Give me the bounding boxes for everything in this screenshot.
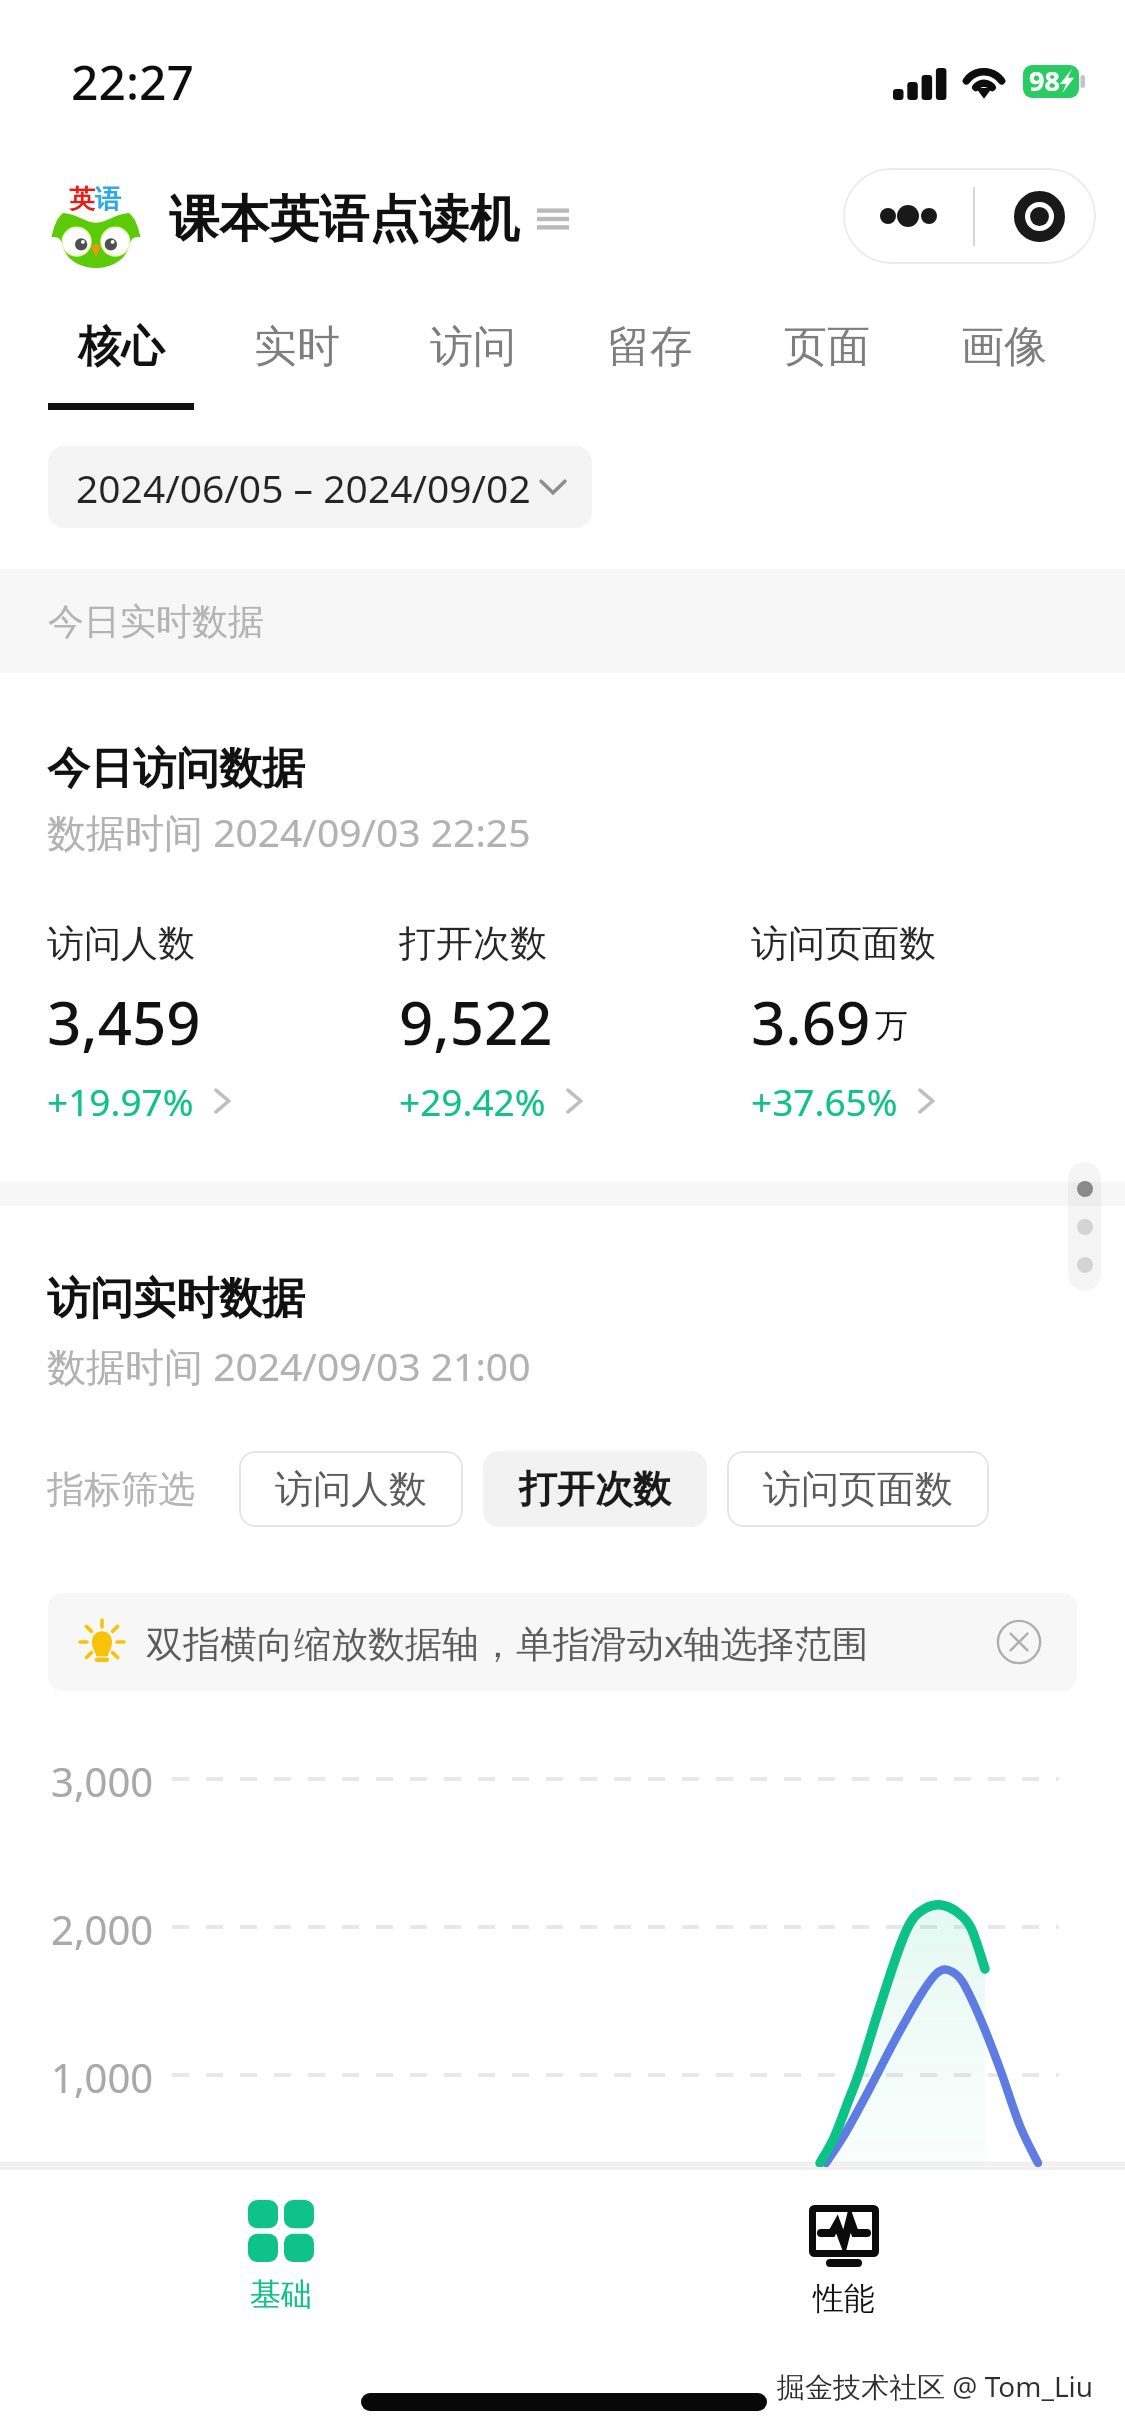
staticText: 核心	[78, 320, 164, 374]
staticText: 打开次数	[399, 920, 547, 967]
button[interactable]: 页面	[738, 290, 915, 425]
staticText: +37.65%	[751, 1076, 898, 1126]
button[interactable]: 访问页面数	[751, 920, 1103, 1126]
button[interactable]: 访问页面数	[727, 1451, 989, 1527]
button[interactable]: 访问人数	[47, 920, 399, 1126]
button[interactable]: 实时	[209, 290, 385, 425]
button[interactable]: Close tip	[995, 1618, 1043, 1666]
staticText: 3,459	[47, 981, 201, 1063]
staticText: 访问	[430, 320, 516, 374]
staticText: 性能	[813, 2279, 875, 2318]
staticText: 2,000	[51, 1902, 154, 1956]
staticText: 访问人数	[275, 1465, 427, 1513]
staticText: 今日实时数据	[48, 599, 264, 644]
staticText: +29.42%	[399, 1076, 546, 1126]
staticText: +19.97%	[47, 1076, 194, 1126]
button[interactable]: 访问	[385, 290, 561, 425]
staticText: 1,000	[51, 2050, 154, 2104]
staticText: 画像	[961, 320, 1047, 374]
staticText: 9,522	[399, 981, 553, 1063]
staticText: 指标筛选	[47, 1466, 195, 1513]
staticText: 访问页面数	[751, 920, 936, 967]
staticText: 数据时间 2024/09/03 21:00	[47, 1339, 531, 1392]
staticText: 基础	[250, 2275, 312, 2314]
staticText: 掘金技术社区 @ Tom_Liu	[777, 2367, 1094, 2405]
staticText: 数据时间 2024/09/03 22:25	[47, 805, 531, 858]
staticText: 实时	[254, 320, 340, 374]
staticText: 3.69	[751, 981, 871, 1063]
staticText: 课本英语点读机	[169, 188, 519, 251]
staticText: 22:27	[71, 49, 194, 114]
staticText: 万	[875, 1005, 908, 1047]
button[interactable]: 性能	[562, 2181, 1125, 2351]
staticText: 打开次数	[519, 1465, 671, 1513]
staticText: 今日访问数据	[47, 742, 305, 796]
staticText: 3,000	[51, 1754, 154, 1808]
staticText: 页面	[784, 320, 870, 374]
button[interactable]: 画像	[915, 290, 1092, 425]
button[interactable]: More and Close	[843, 168, 1096, 264]
staticText: 2024/06/05 – 2024/09/02	[76, 461, 531, 514]
staticText: 英	[69, 183, 95, 216]
button[interactable]: 核心	[33, 290, 209, 425]
button[interactable]: 打开次数	[399, 920, 751, 1126]
button[interactable]: 基础	[0, 2181, 562, 2351]
staticText: 访问页面数	[763, 1465, 953, 1513]
button[interactable]: Mini program menu	[537, 204, 569, 234]
button[interactable]: 打开次数	[483, 1451, 707, 1527]
staticText: 98	[1029, 62, 1060, 99]
staticText: 双指横向缩放数据轴，单指滑动x轴选择范围	[146, 1617, 869, 1668]
button[interactable]: 2024/06/05 – 2024/09/02	[48, 446, 592, 528]
staticText: 语	[95, 183, 121, 216]
staticText: 访问人数	[47, 920, 195, 967]
button[interactable]: 访问人数	[239, 1451, 463, 1527]
staticText: 访问实时数据	[47, 1272, 305, 1326]
staticText: 留存	[607, 320, 693, 374]
button[interactable]: 留存	[561, 290, 738, 425]
